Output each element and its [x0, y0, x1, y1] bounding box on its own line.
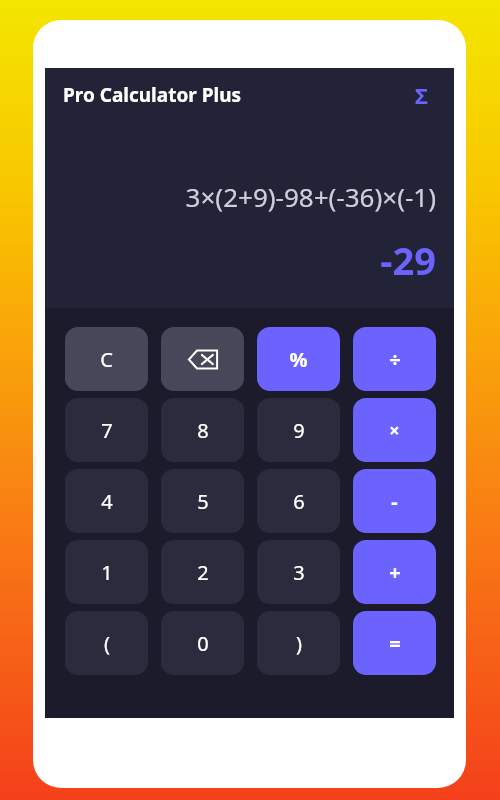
staticText: C: [100, 346, 113, 373]
button[interactable]: Backspace: [161, 327, 244, 391]
staticText: 7: [101, 417, 113, 444]
button[interactable]: ÷: [353, 327, 436, 391]
button[interactable]: 6: [257, 469, 340, 533]
button[interactable]: %: [257, 327, 340, 391]
staticText: 3×(2+9)-98+(-36)×(-1): [185, 179, 436, 214]
staticText: %: [289, 346, 308, 373]
button[interactable]: 2: [161, 540, 244, 604]
staticText: ÷: [389, 346, 401, 373]
staticText: 3: [293, 559, 305, 586]
button[interactable]: 0: [161, 611, 244, 675]
button[interactable]: =: [353, 611, 436, 675]
button[interactable]: ): [257, 611, 340, 675]
button[interactable]: +: [353, 540, 436, 604]
button[interactable]: -: [353, 469, 436, 533]
staticText: ×: [389, 418, 400, 443]
staticText: (: [104, 630, 110, 657]
button[interactable]: 7: [65, 398, 148, 462]
button[interactable]: ×: [353, 398, 436, 462]
staticText: 2: [197, 559, 209, 586]
button[interactable]: 3: [257, 540, 340, 604]
staticText: =: [389, 630, 401, 657]
staticText: Σ: [415, 80, 428, 110]
staticText: 1: [101, 559, 113, 586]
staticText: 0: [197, 630, 209, 657]
button[interactable]: 4: [65, 469, 148, 533]
staticText: -29: [380, 234, 436, 286]
button[interactable]: (: [65, 611, 148, 675]
button[interactable]: 5: [161, 469, 244, 533]
staticText: +: [389, 559, 401, 586]
staticText: 6: [293, 488, 305, 515]
button[interactable]: 1: [65, 540, 148, 604]
button[interactable]: 9: [257, 398, 340, 462]
staticText: 8: [197, 417, 209, 444]
button[interactable]: 8: [161, 398, 244, 462]
staticText: 5: [197, 488, 209, 515]
staticText: 4: [101, 488, 113, 515]
staticText: Pro Calculator Plus: [63, 82, 242, 108]
staticText: -: [391, 488, 398, 515]
staticText: ): [296, 630, 302, 657]
button[interactable]: Sum: [406, 80, 436, 110]
button[interactable]: C: [65, 327, 148, 391]
staticText: 9: [293, 417, 305, 444]
